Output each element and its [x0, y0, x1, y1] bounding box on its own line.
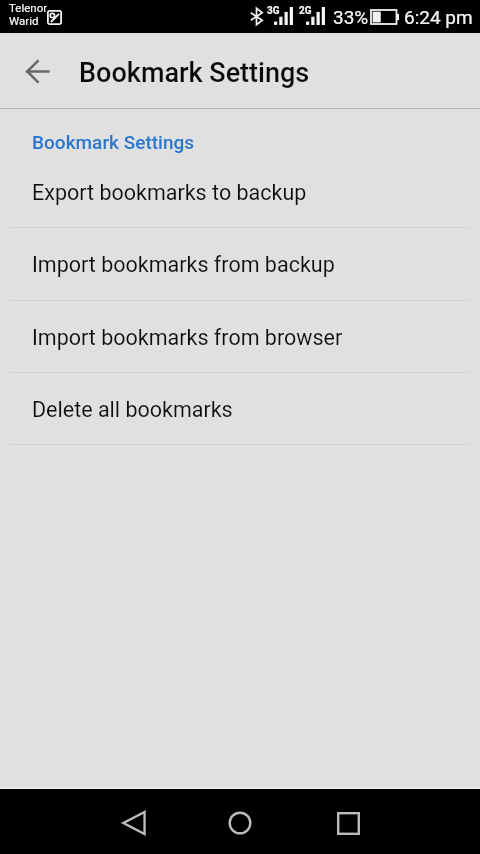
staticText: 33% — [333, 6, 369, 28]
button[interactable]: Delete all bookmarks — [0, 372, 480, 444]
staticText: Bookmark Settings — [32, 131, 195, 153]
button[interactable]: Recent apps — [324, 799, 372, 847]
button[interactable]: Navigate up — [13, 47, 61, 95]
button[interactable]: Import bookmarks from backup — [0, 227, 480, 299]
staticText: Import bookmarks from browser — [32, 325, 343, 350]
button[interactable]: Import bookmarks from browser — [0, 300, 480, 372]
staticText: 3G — [267, 5, 280, 17]
staticText: Export bookmarks to backup — [32, 180, 307, 205]
staticText: Bookmark Settings — [79, 57, 310, 89]
staticText: 2G — [299, 5, 312, 17]
staticText: Telenor — [9, 1, 48, 14]
button[interactable]: Back — [110, 799, 158, 847]
staticText: 6:24 pm — [404, 6, 473, 28]
button[interactable]: Home — [216, 799, 264, 847]
staticText: Warid — [9, 14, 39, 27]
button[interactable]: Export bookmarks to backup — [0, 155, 480, 227]
staticText: Import bookmarks from backup — [32, 252, 335, 277]
staticText: Delete all bookmarks — [32, 397, 233, 422]
